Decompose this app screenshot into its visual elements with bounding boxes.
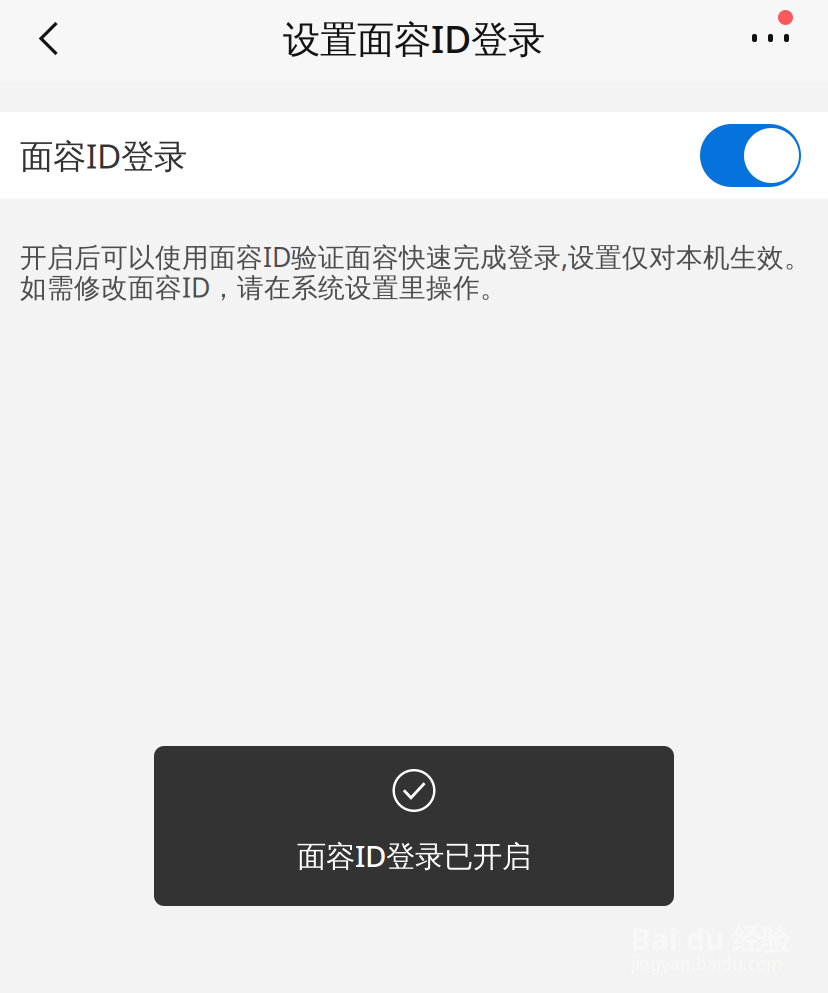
button[interactable]: Back bbox=[0, 0, 110, 81]
staticText: 如需修改面容ID，请在系统设置里操作。 bbox=[20, 269, 507, 305]
staticText: 开启后可以使用面容ID验证面容快速完成登录,设置仅对本机生效。 bbox=[20, 239, 811, 274]
button[interactable]: 面容ID登录, on bbox=[700, 124, 801, 187]
button[interactable]: More options bbox=[708, 0, 828, 81]
staticText: 面容ID登录已开启 bbox=[297, 836, 531, 875]
staticText: 设置面容ID登录 bbox=[283, 14, 545, 63]
staticText: 面容ID登录 bbox=[20, 133, 187, 178]
